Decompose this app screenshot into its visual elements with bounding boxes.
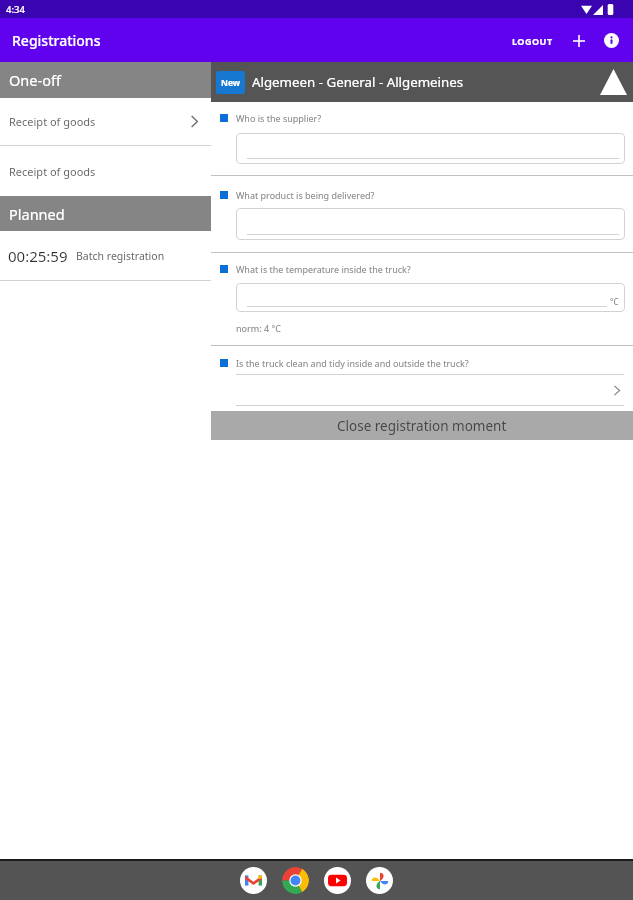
staticText: What is the temperature inside the truck… [236, 263, 411, 275]
button[interactable]: Receipt of goods [0, 146, 211, 196]
staticText: Who is the supplier? [236, 112, 322, 124]
staticText: Close registration moment [337, 417, 507, 435]
button[interactable]: Chrome [282, 867, 309, 894]
staticText: °C [610, 296, 619, 307]
staticText: Is the truck clean and tidy inside and o… [236, 357, 469, 369]
button[interactable]: New [216, 71, 245, 94]
staticText: 4:34 [6, 3, 25, 16]
button[interactable] [236, 133, 625, 164]
staticText: Algemeen - General - Allgemeines [252, 73, 593, 91]
button[interactable]: One-off [0, 62, 211, 98]
staticText: One-off [9, 70, 61, 90]
staticText: New [221, 77, 241, 89]
button[interactable]: Planned [0, 196, 211, 231]
staticText: Batch registration [76, 249, 165, 263]
button[interactable]: LOGOUT [504, 26, 561, 56]
staticText: norm: 4 °C [236, 322, 281, 334]
button[interactable]: Collapse section [593, 62, 633, 102]
staticText: 00:25:59 [8, 246, 68, 266]
staticText: Planned [9, 204, 65, 224]
button[interactable]: Add registration [561, 23, 596, 58]
staticText: LOGOUT [512, 35, 553, 47]
button[interactable]: YouTube [324, 867, 351, 894]
button[interactable]: Google Photos [366, 867, 393, 894]
button[interactable] [236, 208, 625, 240]
button[interactable]: Receipt of goods [0, 98, 211, 145]
button[interactable]: Gmail [240, 867, 267, 894]
staticText: What product is being delivered? [236, 189, 375, 201]
staticText: Receipt of goods [9, 114, 190, 129]
button[interactable]: °C [236, 283, 625, 312]
staticText: Receipt of goods [9, 164, 199, 179]
staticText: Registrations [12, 31, 101, 50]
button[interactable]: Information [596, 25, 627, 56]
button[interactable] [211, 374, 633, 406]
button[interactable]: 00:25:59 [0, 231, 211, 280]
button[interactable]: Close registration moment [211, 411, 633, 440]
